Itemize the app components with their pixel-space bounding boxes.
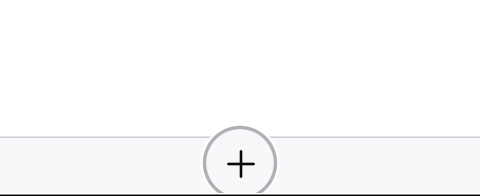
button[interactable]: Add [200,123,280,196]
